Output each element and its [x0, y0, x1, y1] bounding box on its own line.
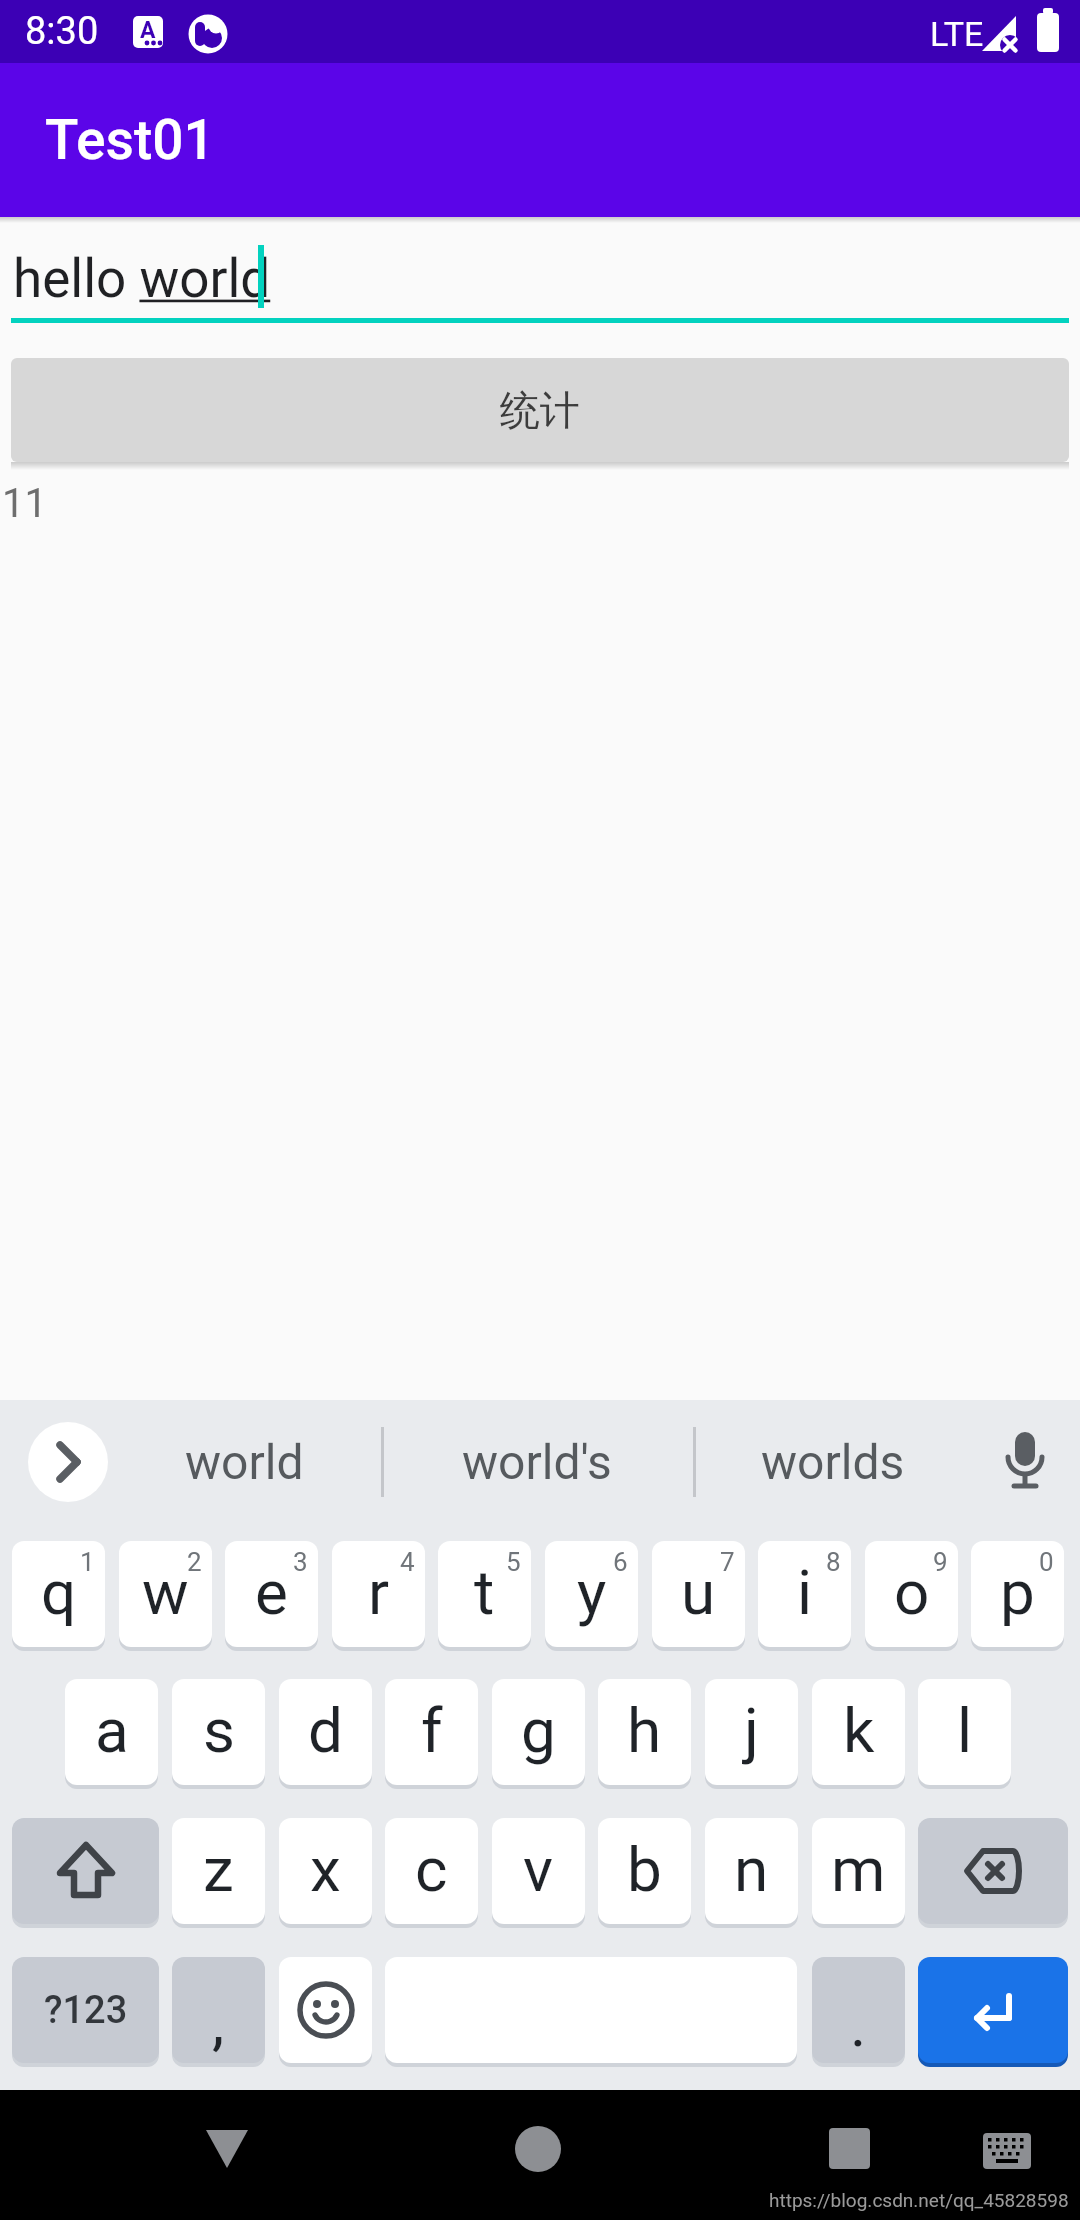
staticText: q: [41, 1556, 77, 1629]
staticText: u: [681, 1556, 716, 1629]
button[interactable]: w: [119, 1541, 212, 1647]
staticText: z: [203, 1833, 234, 1906]
button[interactable]: v: [492, 1818, 585, 1924]
staticText: 0: [1039, 1547, 1054, 1577]
button[interactable]: [918, 1818, 1068, 1924]
button[interactable]: s: [172, 1679, 265, 1785]
staticText: .: [850, 1988, 867, 2061]
staticText: LTE: [930, 14, 984, 54]
staticText: n: [734, 1833, 769, 1906]
button[interactable]: j: [705, 1679, 798, 1785]
staticText: s: [203, 1694, 235, 1767]
button[interactable]: 统计: [11, 358, 1069, 462]
button[interactable]: .: [812, 1957, 905, 2063]
staticText: f: [421, 1694, 443, 1767]
staticText: ,: [212, 1986, 225, 2059]
button[interactable]: b: [598, 1818, 691, 1924]
staticText: t: [474, 1556, 495, 1629]
button[interactable]: c: [385, 1818, 478, 1924]
button[interactable]: k: [812, 1679, 905, 1785]
staticText: A: [140, 17, 156, 44]
staticText: 8: [826, 1547, 841, 1577]
staticText: h: [627, 1694, 662, 1767]
staticText: m: [831, 1833, 886, 1906]
staticText: j: [744, 1694, 759, 1767]
staticText: https://blog.csdn.net/qq_45828598: [769, 2189, 1069, 2211]
staticText: l: [957, 1694, 973, 1767]
staticText: e: [255, 1556, 288, 1629]
staticText: o: [894, 1556, 930, 1629]
staticText: y: [577, 1556, 607, 1629]
staticText: 6: [613, 1547, 628, 1577]
staticText: b: [627, 1833, 662, 1906]
button[interactable]: [12, 1818, 159, 1924]
button[interactable]: [918, 1957, 1068, 2063]
button[interactable]: world: [120, 1422, 368, 1502]
staticText: Test01: [45, 108, 215, 172]
staticText: 9: [933, 1547, 948, 1577]
staticText: g: [521, 1694, 556, 1767]
button[interactable]: t: [438, 1541, 531, 1647]
button[interactable]: worlds: [712, 1422, 954, 1502]
button[interactable]: l: [918, 1679, 1011, 1785]
staticText: 5: [506, 1547, 521, 1577]
button[interactable]: m: [812, 1818, 905, 1924]
button[interactable]: [28, 1422, 108, 1502]
button[interactable]: [205, 2128, 249, 2170]
staticText: x: [310, 1833, 341, 1906]
staticText: 2: [187, 1547, 202, 1577]
button[interactable]: [829, 2128, 870, 2169]
button[interactable]: g: [492, 1679, 585, 1785]
button[interactable]: x: [279, 1818, 372, 1924]
staticText: hello world: [13, 248, 271, 310]
staticText: i: [797, 1556, 813, 1629]
staticText: world's: [462, 1434, 612, 1490]
button[interactable]: [995, 1430, 1055, 1494]
staticText: 统计: [500, 385, 580, 435]
button[interactable]: a: [65, 1679, 158, 1785]
button[interactable]: f: [385, 1679, 478, 1785]
staticText: r: [368, 1556, 390, 1629]
button[interactable]: h: [598, 1679, 691, 1785]
button[interactable]: o: [865, 1541, 958, 1647]
button[interactable]: [279, 1957, 372, 2063]
staticText: 7: [720, 1547, 735, 1577]
button[interactable]: world's: [400, 1422, 674, 1502]
staticText: c: [415, 1833, 448, 1906]
button[interactable]: z: [172, 1818, 265, 1924]
button[interactable]: ,: [172, 1957, 265, 2063]
staticText: ?123: [44, 1988, 128, 2033]
staticText: 8:30: [25, 9, 99, 54]
button[interactable]: y: [545, 1541, 638, 1647]
button[interactable]: p: [971, 1541, 1064, 1647]
staticText: 11: [2, 480, 47, 527]
staticText: v: [523, 1833, 554, 1906]
button[interactable]: ?123: [12, 1957, 159, 2063]
button[interactable]: [515, 2126, 561, 2172]
staticText: 1: [80, 1547, 95, 1577]
staticText: worlds: [761, 1434, 905, 1490]
staticText: k: [843, 1694, 875, 1767]
staticText: d: [308, 1694, 343, 1767]
staticText: 3: [293, 1547, 308, 1577]
button[interactable]: u: [652, 1541, 745, 1647]
staticText: 4: [400, 1547, 415, 1577]
staticText: a: [95, 1694, 129, 1767]
button[interactable]: e: [225, 1541, 318, 1647]
staticText: world: [185, 1434, 304, 1490]
button[interactable]: d: [279, 1679, 372, 1785]
button[interactable]: [983, 2133, 1031, 2169]
button[interactable]: n: [705, 1818, 798, 1924]
staticText: p: [1000, 1556, 1035, 1629]
button[interactable]: q: [12, 1541, 105, 1647]
button[interactable]: i: [758, 1541, 851, 1647]
button[interactable]: hello world: [0, 228, 1080, 320]
button[interactable]: r: [332, 1541, 425, 1647]
staticText: w: [142, 1556, 189, 1629]
